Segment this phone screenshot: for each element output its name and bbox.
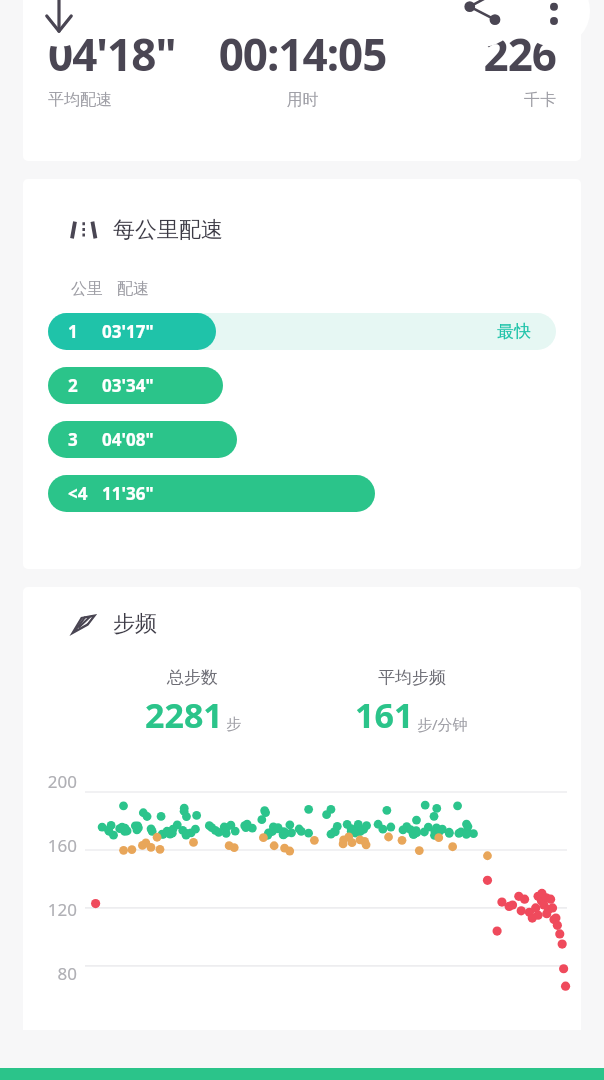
staticText: 03'17" xyxy=(102,320,154,343)
staticText: 步频 xyxy=(113,610,157,638)
button[interactable]: More options xyxy=(518,0,590,47)
staticText: 03'34" xyxy=(102,374,154,397)
button[interactable]: Share xyxy=(446,0,518,47)
staticText: 配速 xyxy=(117,279,149,299)
staticText: 04'08" xyxy=(102,428,154,451)
staticText: 80 xyxy=(57,962,77,985)
button[interactable]: 3 xyxy=(48,421,556,458)
staticText: 公里 xyxy=(71,279,103,299)
button[interactable]: 最快 xyxy=(48,313,556,350)
staticText: 平均配速 xyxy=(48,90,210,110)
staticText: 最快 xyxy=(497,321,531,342)
staticText: 千卡 xyxy=(395,90,556,110)
staticText: 1 xyxy=(68,320,102,343)
staticText: 步/分钟 xyxy=(417,714,468,734)
staticText: 120 xyxy=(47,898,77,921)
button[interactable]: 2 xyxy=(48,367,556,404)
staticText: 平均步频 xyxy=(378,667,446,688)
staticText: 200 xyxy=(47,770,77,793)
staticText: 04'18" xyxy=(48,24,210,84)
button[interactable]: Download xyxy=(23,0,95,47)
staticText: 00:14:05 xyxy=(210,24,395,84)
staticText: 用时 xyxy=(210,90,395,110)
staticText: 步 xyxy=(226,715,241,734)
staticText: <4 xyxy=(68,482,102,505)
staticText: 161 xyxy=(355,692,414,738)
staticText: 总步数 xyxy=(167,667,218,688)
staticText: 3 xyxy=(68,428,102,451)
staticText: 160 xyxy=(47,834,77,857)
button[interactable]: <4 xyxy=(48,475,556,512)
staticText: 2281 xyxy=(145,692,223,738)
staticText: 11'36" xyxy=(102,482,154,505)
staticText: 每公里配速 xyxy=(113,216,223,244)
staticText: 2 xyxy=(68,374,102,397)
staticText: 226 xyxy=(395,24,556,84)
